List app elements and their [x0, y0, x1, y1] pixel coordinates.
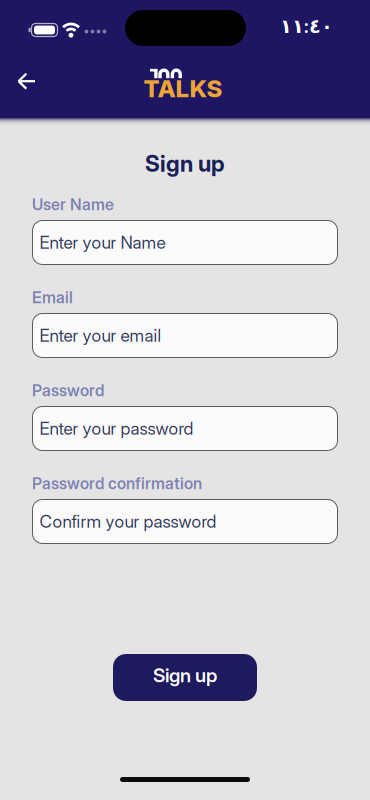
staticText: Enter your Name: [39, 232, 165, 253]
staticText: User Name: [32, 195, 114, 214]
staticText: Enter your password: [39, 418, 193, 439]
staticText: Confirm your password: [39, 511, 216, 532]
button[interactable]: Enter your Name: [32, 220, 337, 264]
staticText: Enter your email: [39, 325, 161, 346]
staticText: TALKS: [143, 74, 222, 103]
staticText: Password: [32, 381, 104, 400]
button[interactable]: Enter your password: [32, 406, 337, 450]
button[interactable]: Enter your email: [32, 313, 337, 357]
staticText: Password confirmation: [32, 474, 202, 493]
button[interactable]: Sign up: [113, 654, 257, 701]
button[interactable]: [8, 63, 44, 99]
staticText: Sign up: [145, 150, 225, 177]
button[interactable]: Confirm your password: [32, 499, 337, 543]
staticText: ١١:٤٠: [280, 14, 333, 38]
staticText: Sign up: [153, 664, 217, 687]
staticText: Email: [32, 288, 73, 307]
